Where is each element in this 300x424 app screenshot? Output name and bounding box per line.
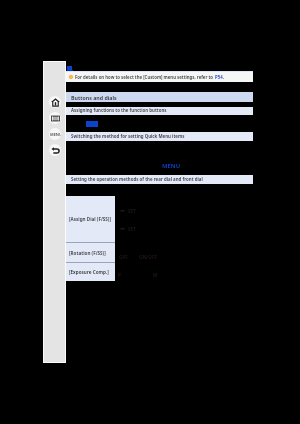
button[interactable]: Contents: [49, 112, 61, 124]
staticText: For details on how to select the [Custom…: [75, 74, 215, 80]
staticText: [Rotation (F/SS)]: [69, 250, 106, 256]
staticText: ◄►: [119, 226, 127, 231]
button[interactable]: Back: [49, 144, 61, 156]
staticText: Setting the operation methods of the rea…: [71, 176, 203, 182]
button[interactable]: Switching the method for setting Quick M…: [66, 132, 253, 141]
staticText: SET: [128, 226, 136, 232]
staticText: ON/OFF: [139, 254, 157, 260]
staticText: .: [223, 74, 225, 80]
button[interactable]: Home: [49, 96, 61, 108]
staticText: Buttons and dials: [71, 94, 117, 101]
staticText: Switching the method for setting Quick M…: [71, 133, 185, 139]
staticText: Assigning functions to the function butt…: [71, 107, 167, 113]
button[interactable]: Buttons and dials: [66, 92, 253, 102]
staticText: [Assign Dial (F/SS)]: [69, 216, 111, 222]
staticText: MENU: [162, 162, 181, 170]
staticText: ◄►: [119, 208, 127, 213]
staticText: [Exposure Comp.]: [69, 269, 109, 275]
staticText: P54: [215, 74, 223, 80]
staticText: P: [118, 272, 121, 278]
button[interactable]: Assigning functions to the function butt…: [66, 107, 253, 115]
staticText: SET: [128, 208, 136, 214]
staticText: OFF: [119, 254, 128, 260]
button[interactable]: Menu: [49, 128, 61, 140]
staticText: M: [153, 272, 158, 278]
button[interactable]: Setting the operation methods of the rea…: [66, 175, 253, 184]
staticText: MENU: [50, 132, 61, 137]
